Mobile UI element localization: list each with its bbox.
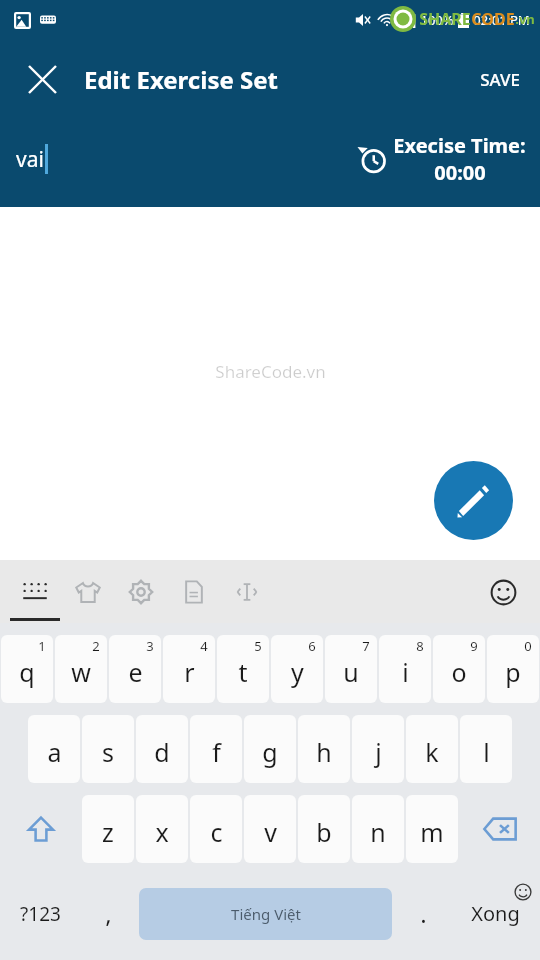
button[interactable]: Backspace [459,795,540,863]
staticText: 02:01 PM [473,11,530,29]
button[interactable]: o [433,635,485,703]
button[interactable]: c [190,795,242,863]
staticText: s [102,735,114,769]
staticText: Execise Time: [393,132,526,159]
staticText: 100% [420,11,454,29]
button[interactable]: x [136,795,188,863]
staticText: i [402,655,409,689]
staticText: 0 [524,637,532,655]
button[interactable]: t [217,635,269,703]
staticText: 5 [254,637,262,655]
button[interactable]: Text edit [220,560,273,623]
staticText: 3 [146,637,154,655]
button[interactable]: l [460,715,512,783]
staticText: 9 [470,637,478,655]
button[interactable]: z [82,795,134,863]
button[interactable]: b [298,795,350,863]
button[interactable]: d [136,715,188,783]
staticText: ?123 [20,901,61,927]
staticText: j [375,735,382,769]
staticText: 8 [416,637,424,655]
button[interactable]: Tiếng Việt [139,888,392,940]
staticText: 00:00 [434,159,486,186]
staticText: SAVE [480,68,520,91]
button[interactable]: Emoji [480,569,526,615]
staticText: 6 [308,637,316,655]
staticText: Tiếng Việt [231,904,301,924]
button[interactable]: Edit [434,461,513,540]
staticText: r [184,655,195,689]
staticText: 7 [362,637,370,655]
button[interactable]: SAVE [460,48,540,110]
staticText: w [71,655,91,689]
button[interactable]: ?123 [0,875,81,952]
staticText: d [154,735,170,769]
button[interactable]: g [244,715,296,783]
staticText: vai [16,145,44,174]
staticText: p [505,655,521,689]
staticText: x [155,815,169,849]
staticText: e [128,655,143,689]
staticText: m [420,815,444,849]
staticText: ShareCode.vn [215,360,326,383]
button[interactable]: s [82,715,134,783]
button[interactable]: n [352,795,404,863]
staticText: l [483,735,490,769]
staticText: y [291,655,304,689]
button[interactable]: f [190,715,242,783]
button[interactable]: Shift [0,795,81,863]
button[interactable]: Clipboard [167,560,220,623]
staticText: 1 [38,637,46,655]
button[interactable]: w [55,635,107,703]
button[interactable]: Xong [450,875,540,952]
staticText: u [343,655,359,689]
staticText: a [47,735,62,769]
staticText: b [316,815,332,849]
button[interactable]: y [271,635,323,703]
staticText: Edit Exercise Set [84,63,278,96]
button[interactable]: p [487,635,539,703]
button[interactable]: j [352,715,404,783]
button[interactable]: q [1,635,53,703]
button[interactable]: r [163,635,215,703]
button[interactable]: k [406,715,458,783]
staticText: v [264,815,277,849]
button[interactable]: Keyboard [8,560,61,623]
button[interactable]: . [396,875,450,952]
staticText: CODE [471,8,515,30]
staticText: h [316,735,332,769]
staticText: g [262,735,278,769]
staticText: . [420,897,427,930]
button[interactable]: a [28,715,80,783]
staticText: 4 [200,637,208,655]
staticText: k [425,735,439,769]
button[interactable]: m [406,795,458,863]
staticText: q [19,655,35,689]
button[interactable]: e [109,635,161,703]
button[interactable]: v [244,795,296,863]
staticText: 2 [92,637,100,655]
staticText: t [238,655,248,689]
staticText: , [105,897,112,930]
button[interactable]: Themes [61,560,114,623]
button[interactable]: i [379,635,431,703]
button[interactable]: vai [16,144,355,174]
staticText: f [212,735,221,769]
staticText: z [102,815,114,849]
button[interactable]: u [325,635,377,703]
staticText: .vn [515,10,535,28]
button[interactable]: , [81,875,135,952]
staticText: SHARE [419,8,471,30]
staticText: c [210,815,223,849]
staticText: n [370,815,386,849]
button[interactable]: Close [0,48,84,110]
staticText: o [451,655,467,689]
button[interactable]: h [298,715,350,783]
button[interactable]: Settings [114,560,167,623]
staticText: Xong [471,900,520,927]
